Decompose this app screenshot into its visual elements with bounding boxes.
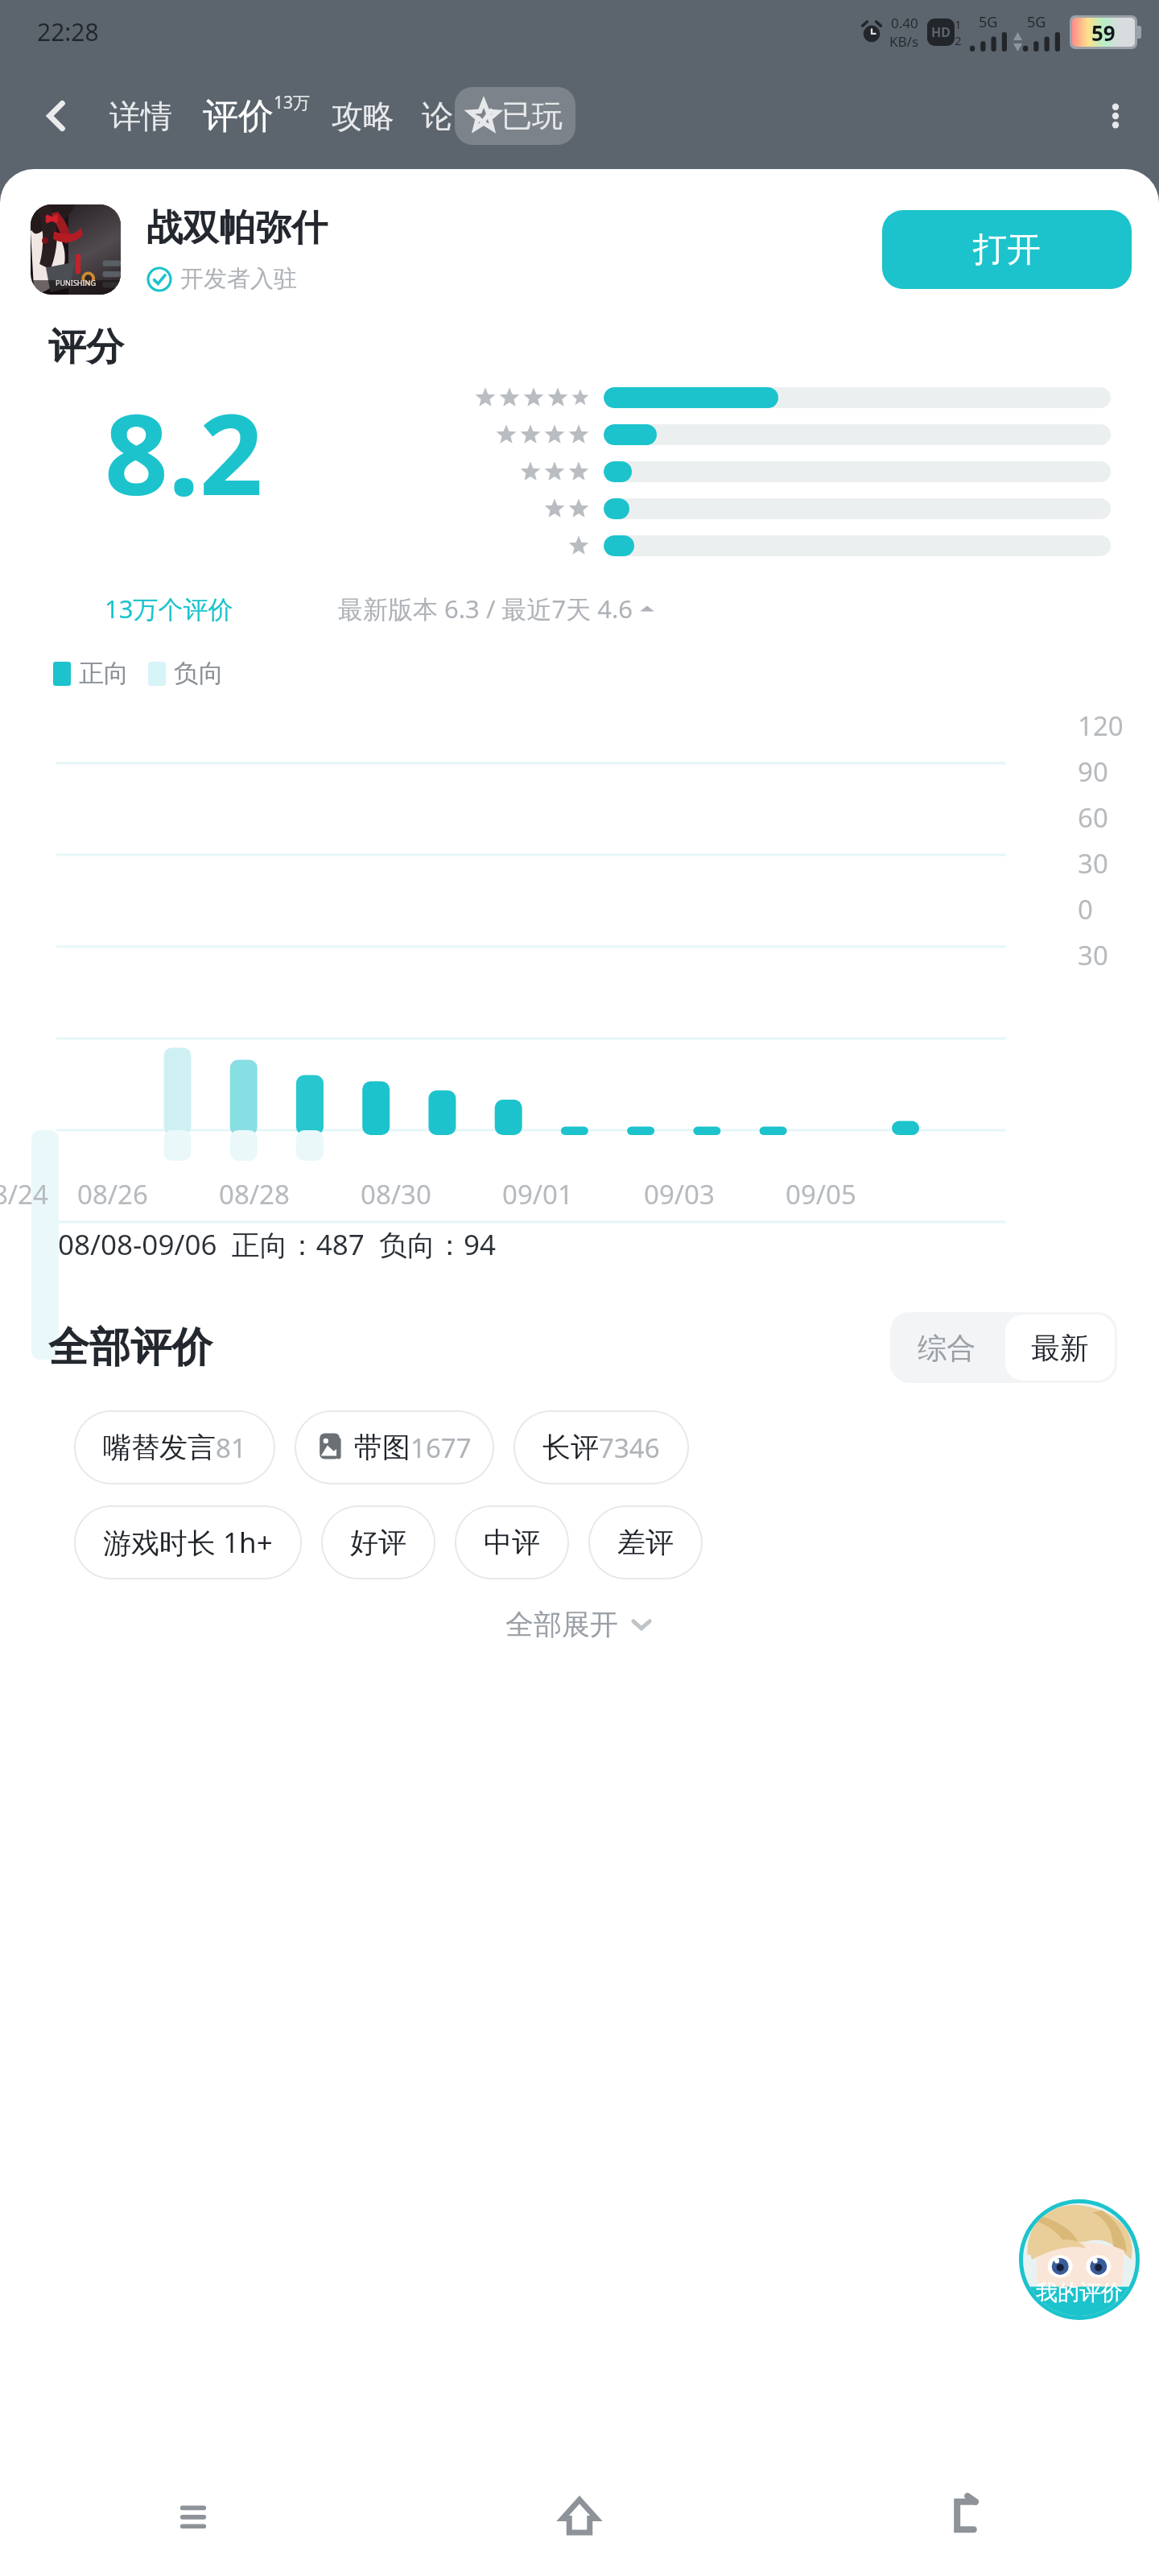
staticText: 嘴替发言 xyxy=(103,1430,216,1465)
button[interactable]: 中评 xyxy=(456,1507,567,1578)
staticText: 13万 xyxy=(274,91,311,114)
button[interactable]: 13万个评价 xyxy=(105,592,233,625)
staticText: 打开 xyxy=(973,229,1041,271)
button[interactable]: Recent apps xyxy=(0,2455,386,2576)
staticText: 13万个评价 xyxy=(105,592,233,625)
staticText: 负向 xyxy=(174,658,224,689)
staticText: 长评 xyxy=(542,1430,599,1465)
staticText: 我的评价 xyxy=(1036,2279,1123,2306)
staticText: 0.40 xyxy=(891,14,918,32)
staticText: 全部展开 xyxy=(505,1607,618,1642)
staticText: 论 xyxy=(422,97,453,136)
staticText: 中评 xyxy=(484,1525,540,1560)
staticText: 好评 xyxy=(350,1525,406,1560)
staticText: 1 xyxy=(955,16,962,32)
staticText: 开发者入驻 xyxy=(180,264,297,294)
staticText: 08/26 xyxy=(77,1176,148,1212)
button[interactable]: 长评 xyxy=(515,1412,687,1483)
staticText: 5G xyxy=(1027,12,1046,32)
staticText: 最新 xyxy=(1031,1330,1089,1366)
button[interactable]: 带图 xyxy=(296,1412,493,1483)
button[interactable]: 最新版本 6.3 / 最近7天 4.6 xyxy=(338,592,656,625)
staticText: 30 xyxy=(1078,845,1108,881)
button[interactable]: 我的评价 xyxy=(1019,2199,1140,2320)
button[interactable]: More options xyxy=(1090,90,1141,142)
staticText: 2 xyxy=(955,32,962,48)
staticText: 全部评价 xyxy=(48,1322,212,1373)
button[interactable]: 已玩 xyxy=(455,87,575,145)
button[interactable]: Back xyxy=(24,84,89,148)
staticText: 0 xyxy=(1078,891,1093,927)
staticText: 评分 xyxy=(48,324,124,371)
staticText: 09/03 xyxy=(644,1176,715,1212)
staticText: KB/s xyxy=(889,32,919,51)
button[interactable]: 攻略 xyxy=(325,89,401,144)
button[interactable]: 评价 xyxy=(200,89,314,143)
button[interactable]: App icon xyxy=(31,204,121,295)
staticText: 详情 xyxy=(109,97,172,136)
staticText: 22:28 xyxy=(37,15,99,48)
staticText: 游戏时长 1h+ xyxy=(103,1523,273,1562)
button[interactable]: 游戏时长 1h+ xyxy=(76,1507,300,1578)
staticText: 综合 xyxy=(918,1330,975,1366)
staticText: 59 xyxy=(1091,19,1116,47)
staticText: 1677 xyxy=(410,1430,472,1466)
staticText: 60 xyxy=(1078,799,1108,836)
button[interactable]: 综合 xyxy=(890,1312,1003,1383)
staticText: 差评 xyxy=(617,1525,674,1560)
button[interactable]: Back xyxy=(773,2455,1159,2576)
staticText: 8.2 xyxy=(105,376,263,527)
staticText: 08/28 xyxy=(219,1176,290,1212)
staticText: PUNISHING xyxy=(56,278,96,287)
staticText: 09/01 xyxy=(502,1176,573,1212)
button[interactable]: 论 xyxy=(422,89,453,144)
staticText: HD xyxy=(931,23,951,41)
staticText: 已玩 xyxy=(501,97,563,135)
staticText: 7346 xyxy=(599,1430,660,1466)
staticText: 30 xyxy=(1078,937,1108,973)
button[interactable]: 最新 xyxy=(1005,1315,1115,1381)
button[interactable]: Home xyxy=(386,2455,773,2576)
staticText: 最新版本 6.3 / 最近7天 4.6 xyxy=(338,592,633,625)
staticText: 攻略 xyxy=(332,97,394,136)
other: My review xyxy=(1019,2199,1140,2320)
staticText: 正向 xyxy=(79,658,129,689)
button[interactable]: 全部展开 xyxy=(0,1607,1159,1642)
staticText: 评价 xyxy=(203,94,274,138)
button[interactable]: 详情 xyxy=(103,89,179,144)
staticText: 90 xyxy=(1078,753,1108,790)
staticText: 08/08-09/06 正向：487 负向：94 xyxy=(58,1225,496,1264)
staticText: 81 xyxy=(216,1430,246,1466)
staticText: 08/24 xyxy=(0,1176,48,1212)
button[interactable]: 差评 xyxy=(590,1507,701,1578)
staticText: 带图 xyxy=(354,1430,410,1465)
staticText: 5G xyxy=(979,12,998,32)
button[interactable]: 好评 xyxy=(323,1507,434,1578)
button[interactable]: 打开 xyxy=(882,210,1132,289)
staticText: 120 xyxy=(1078,708,1124,744)
staticText: 09/05 xyxy=(786,1176,856,1212)
staticText: 战双帕弥什 xyxy=(146,205,328,251)
button[interactable]: 嘴替发言 xyxy=(76,1412,274,1483)
staticText: 08/30 xyxy=(361,1176,431,1212)
